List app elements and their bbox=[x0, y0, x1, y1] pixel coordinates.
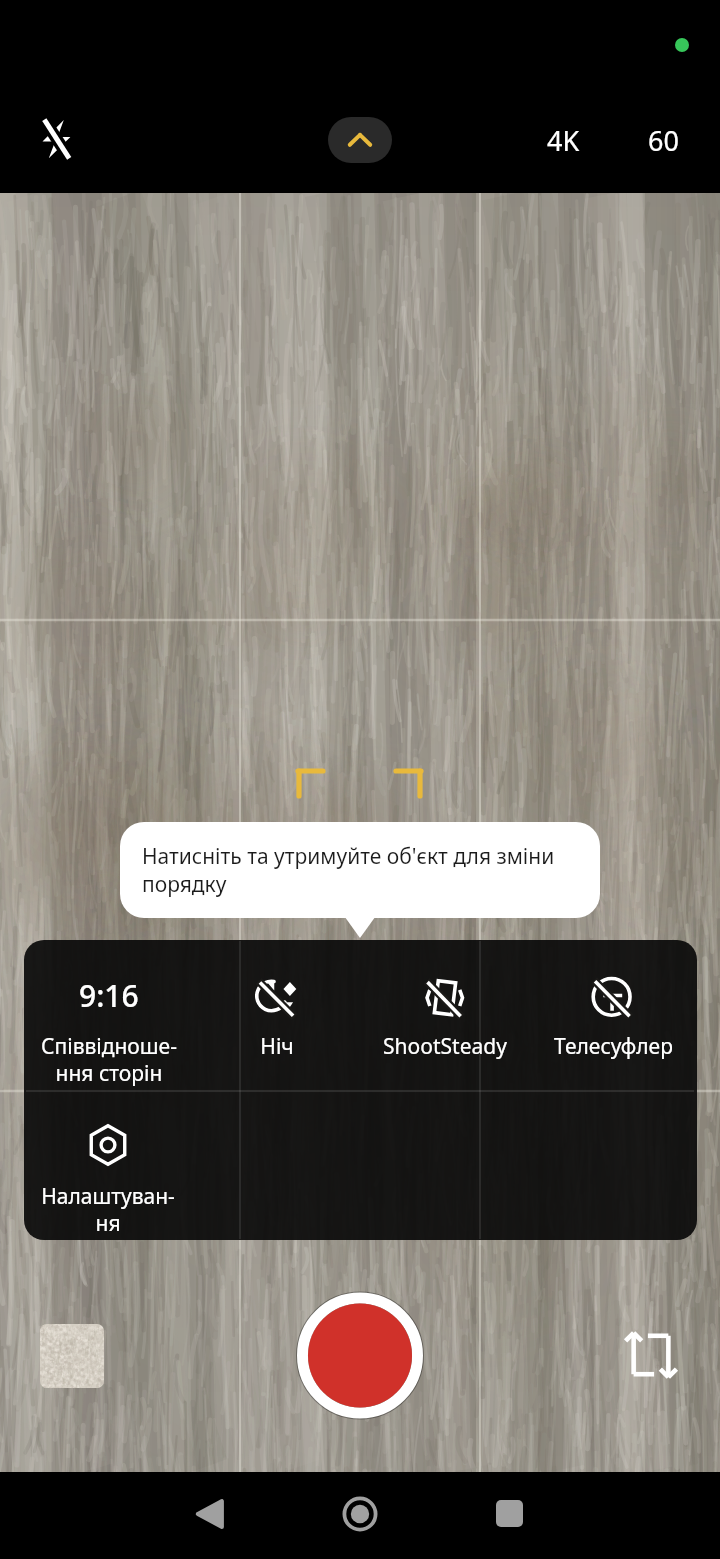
staticText: 4K bbox=[547, 122, 580, 159]
staticText: ShootSteady bbox=[383, 1032, 507, 1061]
button[interactable]: Налаштуван- ня bbox=[24, 1090, 192, 1237]
staticText: 60 bbox=[648, 122, 679, 159]
button[interactable]: Expand options bbox=[328, 117, 392, 163]
button[interactable]: Gallery bbox=[40, 1324, 104, 1388]
button[interactable]: Switch camera bbox=[616, 1320, 686, 1390]
button[interactable]: ShootSteady bbox=[361, 940, 529, 1061]
button[interactable]: Телесуфлер bbox=[529, 940, 697, 1061]
button[interactable]: Ніч bbox=[193, 940, 361, 1061]
button[interactable]: Record bbox=[294, 1290, 426, 1422]
button[interactable]: Back bbox=[170, 1470, 250, 1557]
button[interactable]: 60 bbox=[620, 112, 706, 168]
staticText: 9:16 bbox=[79, 975, 139, 1016]
button[interactable]: 4K bbox=[520, 112, 606, 168]
staticText: Співвідноше- ння сторін bbox=[41, 1032, 177, 1087]
button[interactable]: Recents bbox=[469, 1470, 549, 1557]
button[interactable]: 9:16 bbox=[24, 940, 193, 1087]
button[interactable]: Home bbox=[320, 1470, 400, 1557]
button[interactable]: Натисніть та утримуйте об'єкт для зміни … bbox=[120, 822, 600, 918]
staticText: Телесуфлер bbox=[554, 1032, 673, 1061]
staticText: Ніч bbox=[260, 1032, 294, 1061]
staticText: Налаштуван- ня bbox=[41, 1182, 175, 1237]
staticText: Натисніть та утримуйте об'єкт для зміни … bbox=[142, 842, 582, 898]
button[interactable]: Flash off bbox=[26, 109, 86, 169]
